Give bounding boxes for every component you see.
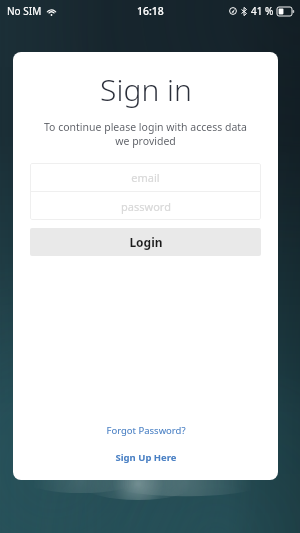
staticText: Sign in	[100, 69, 192, 110]
staticText: email	[131, 170, 160, 185]
button[interactable]: password	[30, 192, 261, 220]
staticText: password	[121, 199, 171, 214]
button[interactable]: Forgot Password?	[96, 421, 196, 440]
staticText: To continue please login with access dat…	[44, 120, 247, 148]
staticText: 41 %	[251, 4, 274, 18]
staticText: Sign Up Here	[115, 451, 177, 464]
staticText: No SIM	[7, 4, 42, 18]
button[interactable]: email	[30, 163, 261, 191]
button[interactable]: Sign Up Here	[105, 448, 187, 467]
button[interactable]: Login	[30, 228, 261, 256]
staticText: Forgot Password?	[106, 424, 186, 437]
staticText: 16:18	[137, 4, 164, 18]
staticText: Login	[129, 234, 163, 250]
